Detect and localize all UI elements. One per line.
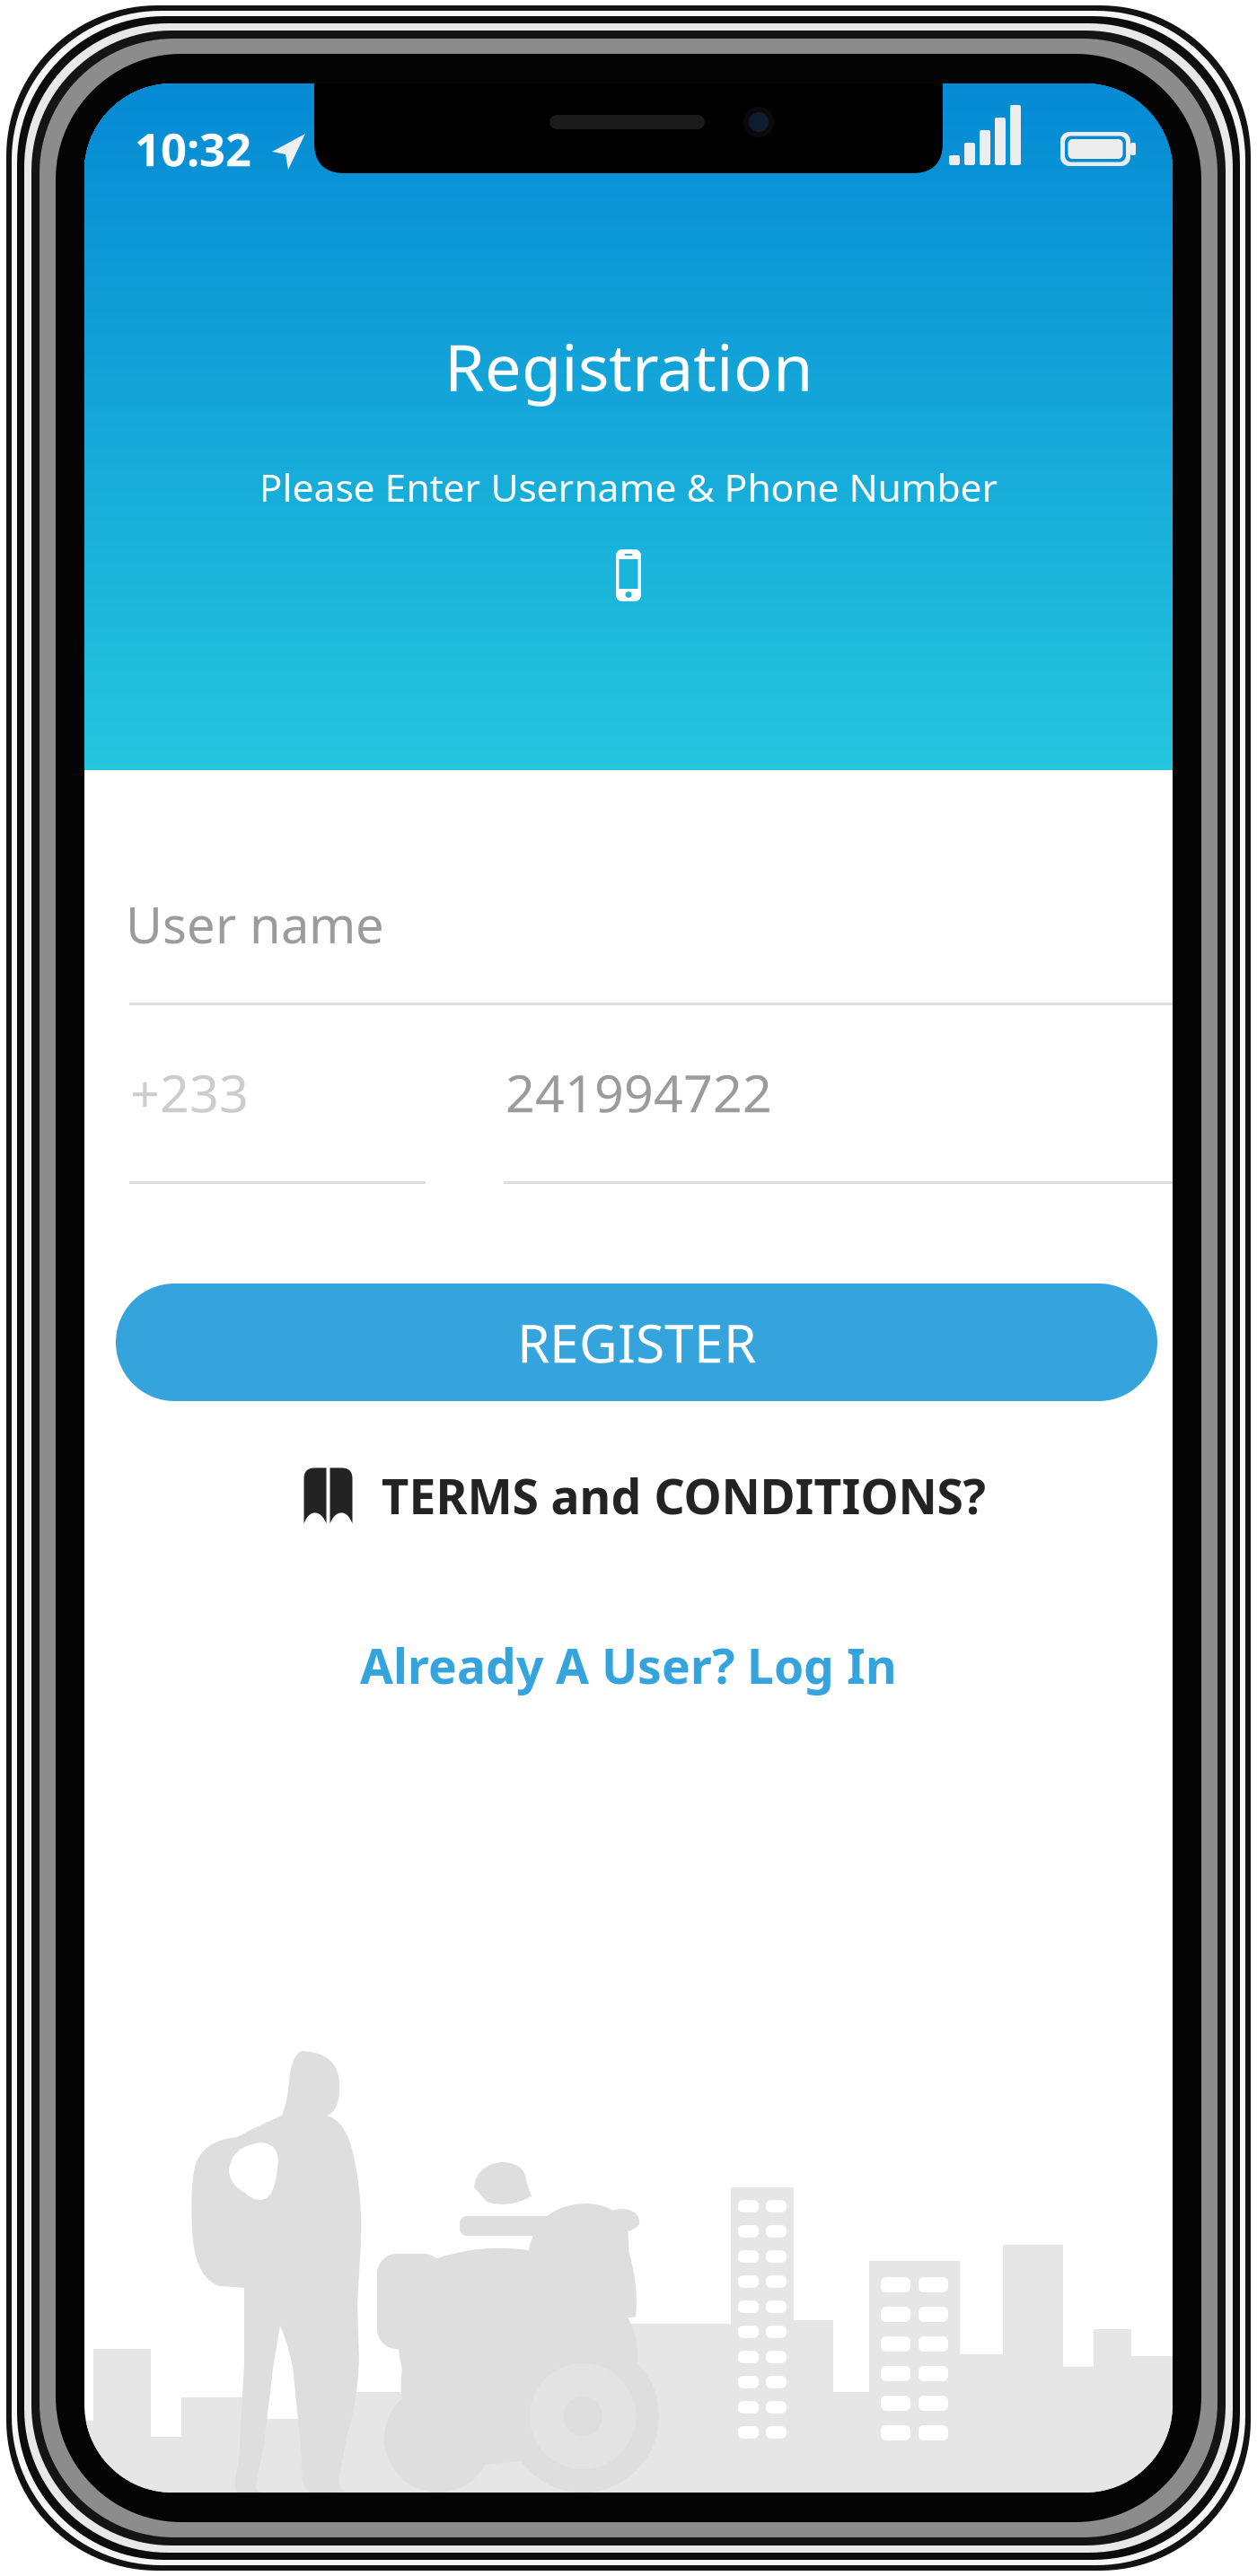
staticText: 241994722 — [505, 1058, 772, 1127]
staticText: REGISTER — [517, 1307, 756, 1377]
button[interactable]: REGISTER — [116, 1284, 1157, 1401]
staticText: Already A User? Log In — [360, 1634, 897, 1697]
staticText: Registration — [444, 323, 813, 409]
staticText: 10:32 — [135, 118, 251, 179]
staticText: Please Enter Username & Phone Number — [259, 461, 998, 512]
button[interactable]: TERMS and CONDITIONS? — [254, 1453, 1003, 1538]
staticText: TERMS and CONDITIONS? — [381, 1464, 985, 1527]
staticText: +233 — [130, 1058, 249, 1127]
button[interactable]: Already A User? Log In — [342, 1623, 915, 1708]
staticText: User name — [126, 890, 384, 957]
